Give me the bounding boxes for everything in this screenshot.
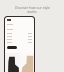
button[interactable]: [7, 46, 17, 49]
staticText: Discover how our style: [15, 5, 50, 9]
button[interactable]: [5, 53, 19, 72]
staticText: works: [27, 9, 37, 13]
button[interactable]: [19, 53, 34, 72]
